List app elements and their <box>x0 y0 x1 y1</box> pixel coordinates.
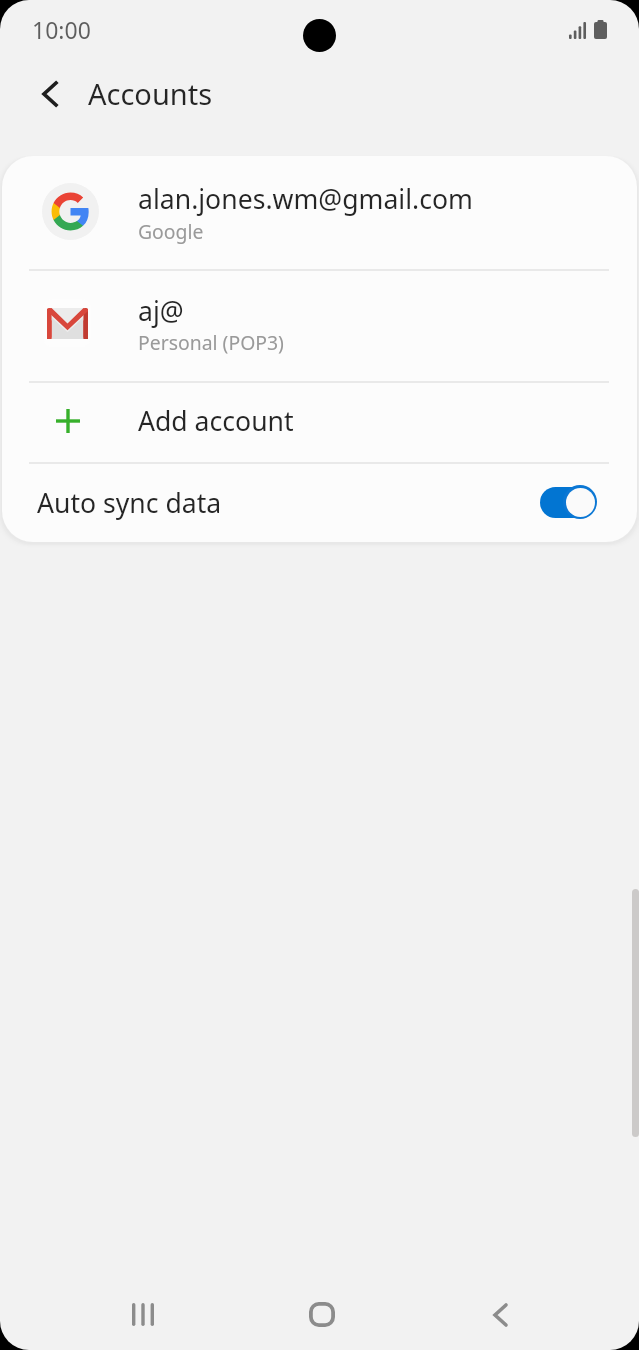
staticText: Auto sync data <box>37 485 222 521</box>
button[interactable]: Navigate up <box>23 68 77 122</box>
button[interactable]: Home <box>275 1276 369 1350</box>
staticText: aj@ <box>138 293 184 329</box>
button[interactable]: Auto sync data <box>2 463 637 542</box>
staticText: Personal (POP3) <box>138 329 284 355</box>
button[interactable] <box>540 484 597 520</box>
button[interactable]: aj@ <box>2 270 637 381</box>
staticText: alan.jones.wm@gmail.com <box>138 181 473 217</box>
staticText: Google <box>138 218 204 244</box>
button[interactable]: Add account <box>2 382 637 462</box>
button[interactable]: Recents <box>96 1276 190 1350</box>
button[interactable]: alan.jones.wm@gmail.com <box>2 156 637 269</box>
button[interactable]: Back <box>453 1276 547 1350</box>
staticText: Add account <box>138 403 294 439</box>
staticText: Accounts <box>88 74 213 113</box>
staticText: 10:00 <box>32 14 91 45</box>
